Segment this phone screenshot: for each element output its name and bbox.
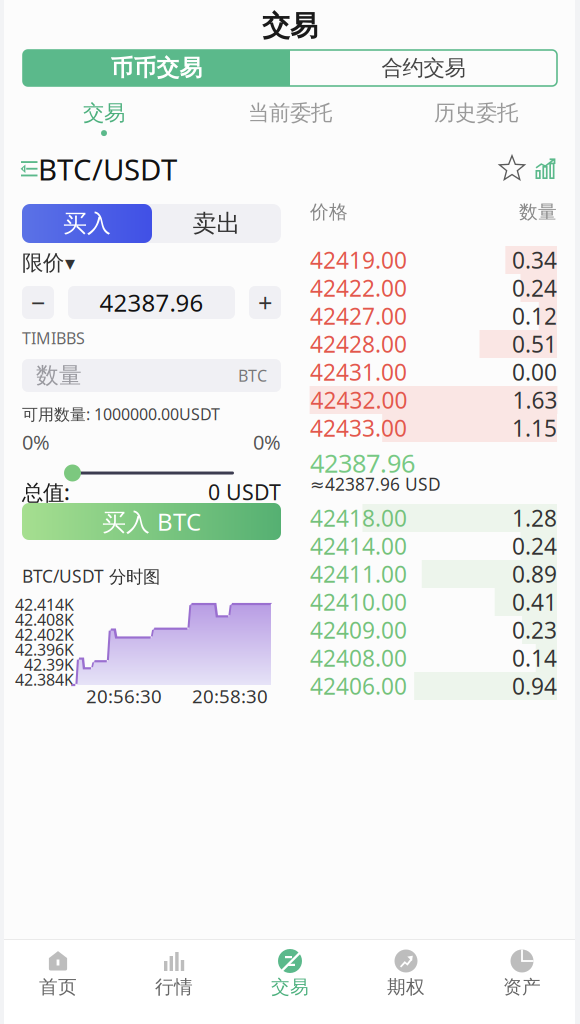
staticText: 42422.00 bbox=[310, 273, 407, 303]
staticText: 42419.00 bbox=[310, 245, 407, 275]
staticText: 数量 bbox=[36, 362, 82, 389]
staticText: 0.24 bbox=[512, 531, 557, 561]
button[interactable]: 历史委托 bbox=[387, 97, 565, 139]
staticText: 总值: bbox=[22, 478, 70, 506]
staticText: 合约交易 bbox=[381, 55, 465, 81]
staticText: 42431.00 bbox=[310, 357, 407, 387]
staticText: 1.63 bbox=[512, 385, 557, 415]
staticText: + bbox=[258, 286, 272, 319]
staticText: 42433.00 bbox=[310, 413, 407, 443]
staticText: TIMIBBS bbox=[22, 327, 85, 349]
staticText: 交易 bbox=[271, 975, 309, 998]
staticText: 42409.00 bbox=[310, 615, 407, 645]
staticText: 0.00 bbox=[512, 357, 557, 387]
staticText: 42.396K bbox=[15, 639, 74, 660]
button[interactable]: 42431.00 bbox=[310, 358, 557, 386]
staticText: 0% bbox=[253, 429, 281, 455]
staticText: 交易 bbox=[83, 100, 125, 126]
staticText: 20:58:30 bbox=[192, 684, 268, 708]
staticText: 当前委托 bbox=[248, 100, 332, 126]
staticText: BTC/USDT bbox=[38, 149, 177, 188]
staticText: 限价 bbox=[22, 250, 64, 276]
button[interactable]: 买入 bbox=[22, 204, 152, 243]
button[interactable]: 42418.00 bbox=[310, 504, 557, 532]
button[interactable]: 减少 bbox=[22, 286, 54, 319]
staticText: 币币交易 bbox=[110, 54, 202, 82]
button[interactable]: 币币交易 bbox=[23, 50, 290, 86]
staticText: ▾ bbox=[65, 252, 75, 274]
staticText: 卖出 bbox=[192, 209, 240, 238]
staticText: 买入 BTC bbox=[102, 506, 201, 537]
button[interactable]: 交易 bbox=[232, 947, 348, 999]
button[interactable]: 42422.00 bbox=[310, 274, 557, 302]
staticText: 0.94 bbox=[512, 671, 557, 701]
button[interactable]: 首页 bbox=[0, 947, 116, 999]
staticText: 42387.96 bbox=[310, 446, 415, 480]
button[interactable]: 期权 bbox=[348, 947, 464, 999]
staticText: 42406.00 bbox=[310, 671, 407, 701]
staticText: 0.24 bbox=[512, 273, 557, 303]
button[interactable]: 当前委托 bbox=[201, 97, 379, 139]
staticText: 0% bbox=[22, 429, 50, 455]
staticText: 行情 bbox=[155, 975, 193, 998]
button[interactable]: 42432.00 bbox=[310, 386, 557, 414]
button[interactable]: 42433.00 bbox=[310, 414, 557, 442]
button[interactable]: 42427.00 bbox=[310, 302, 557, 330]
button[interactable]: K线图 bbox=[525, 158, 556, 180]
button[interactable]: 卖出 bbox=[152, 204, 281, 243]
staticText: 42432.00 bbox=[310, 385, 407, 415]
button[interactable]: 限价 bbox=[22, 252, 75, 274]
staticText: 42.414K bbox=[15, 594, 74, 615]
staticText: 首页 bbox=[39, 975, 77, 998]
staticText: 0.41 bbox=[512, 587, 557, 617]
staticText: 42410.00 bbox=[310, 587, 407, 617]
staticText: 42408.00 bbox=[310, 643, 407, 673]
staticText: 42.408K bbox=[15, 609, 74, 630]
staticText: 1.15 bbox=[512, 413, 557, 443]
staticText: BTC/USDT 分时图 bbox=[22, 564, 160, 587]
staticText: BTC bbox=[238, 365, 267, 386]
staticText: 买入 bbox=[63, 209, 111, 238]
button[interactable]: 42411.00 bbox=[310, 560, 557, 588]
staticText: 0.34 bbox=[512, 245, 557, 275]
staticText: 数量 bbox=[519, 200, 557, 223]
staticText: 1.28 bbox=[512, 503, 557, 533]
staticText: 期权 bbox=[387, 975, 425, 998]
button[interactable]: 42428.00 bbox=[310, 330, 557, 358]
staticText: 0.12 bbox=[512, 301, 557, 331]
staticText: 0 USDT bbox=[208, 478, 281, 506]
staticText: 42.402K bbox=[15, 624, 74, 645]
staticText: 1000000.00USDT bbox=[90, 403, 220, 425]
button[interactable]: 42406.00 bbox=[310, 672, 557, 700]
button[interactable]: 42410.00 bbox=[310, 588, 557, 616]
button[interactable]: 42414.00 bbox=[310, 532, 557, 560]
staticText: 价格 bbox=[310, 200, 348, 223]
button[interactable]: 合约交易 bbox=[290, 50, 557, 86]
staticText: 交易 bbox=[262, 9, 318, 43]
button[interactable]: 买入 BTC bbox=[22, 503, 281, 540]
button[interactable]: 收藏 bbox=[500, 156, 525, 181]
button[interactable]: 行情 bbox=[116, 947, 232, 999]
button[interactable]: 交易 bbox=[15, 97, 193, 139]
button[interactable]: 资产 bbox=[464, 947, 580, 999]
staticText: ≈42387.96 USD bbox=[310, 472, 441, 495]
staticText: 42418.00 bbox=[310, 503, 407, 533]
staticText: 历史委托 bbox=[434, 100, 518, 126]
staticText: 0.89 bbox=[512, 559, 557, 589]
staticText: 0.51 bbox=[512, 329, 557, 359]
staticText: 资产 bbox=[503, 975, 541, 998]
staticText: 20:56:30 bbox=[86, 684, 162, 708]
staticText: 42411.00 bbox=[310, 559, 407, 589]
staticText: 42427.00 bbox=[310, 301, 407, 331]
staticText: 0.14 bbox=[512, 643, 557, 673]
staticText: 42.384K bbox=[15, 669, 74, 690]
button[interactable]: 42409.00 bbox=[310, 616, 557, 644]
staticText: 42387.96 bbox=[99, 287, 203, 318]
button[interactable]: 42419.00 bbox=[310, 246, 557, 274]
staticText: − bbox=[31, 286, 45, 319]
staticText: 42414.00 bbox=[310, 531, 407, 561]
staticText: 42.39K bbox=[24, 654, 74, 675]
staticText: 0.23 bbox=[512, 615, 557, 645]
button[interactable]: 42408.00 bbox=[310, 644, 557, 672]
button[interactable]: 增加 bbox=[249, 286, 281, 319]
